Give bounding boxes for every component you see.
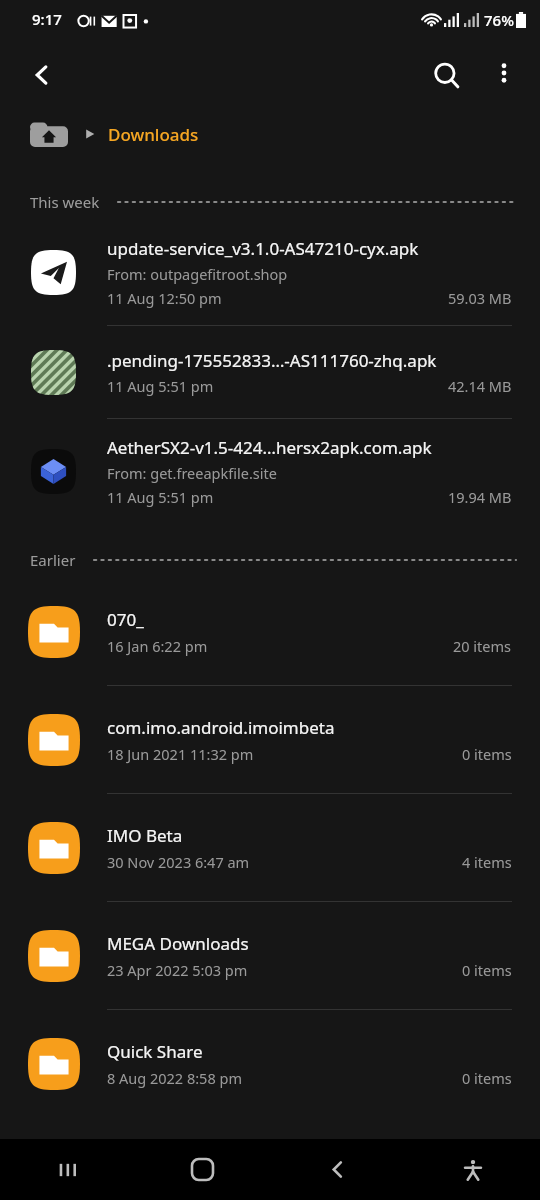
staticText: 0 items <box>462 744 512 764</box>
button[interactable]: MEGA Downloads <box>0 902 540 1009</box>
staticText: 19.94 MB <box>448 487 512 507</box>
staticText: 11 Aug 5:51 pm <box>107 487 214 507</box>
staticText: 0 items <box>462 1068 512 1088</box>
button[interactable]: AetherSX2-v1.5-424…hersx2apk.com.apk <box>0 419 540 524</box>
button[interactable]: Downloads <box>108 123 199 146</box>
staticText: com.imo.android.imoimbeta <box>107 716 335 739</box>
staticText: Downloads <box>108 123 199 146</box>
staticText: IMO Beta <box>107 824 183 847</box>
button[interactable]: Home <box>135 1139 270 1200</box>
staticText: 18 Jun 2021 11:32 pm <box>107 744 254 764</box>
button[interactable]: 070_ <box>0 578 540 685</box>
button[interactable]: Home folder <box>30 119 68 149</box>
staticText: 23 Apr 2022 5:03 pm <box>107 960 248 980</box>
button[interactable]: Quick Share <box>0 1010 540 1117</box>
staticText: MEGA Downloads <box>107 932 249 955</box>
staticText: .pending-175552833…-AS111760-zhq.apk <box>107 349 437 372</box>
staticText: From: outpagefitroot.shop <box>107 264 288 284</box>
staticText: 070_ <box>107 608 144 631</box>
staticText: 11 Aug 5:51 pm <box>107 376 214 396</box>
button[interactable]: Back <box>12 45 72 105</box>
staticText: 30 Nov 2023 6:47 am <box>107 852 250 872</box>
staticText: This week <box>30 192 100 212</box>
staticText: 11 Aug 12:50 pm <box>107 288 222 308</box>
staticText: 76% <box>484 10 514 30</box>
staticText: 8 Aug 2022 8:58 pm <box>107 1068 242 1088</box>
button[interactable]: More options <box>476 45 532 101</box>
staticText: 42.14 MB <box>448 376 512 396</box>
staticText: 9:17 <box>32 9 62 29</box>
button[interactable]: Accessibility <box>405 1139 540 1200</box>
staticText: AetherSX2-v1.5-424…hersx2apk.com.apk <box>107 436 432 459</box>
button[interactable]: com.imo.android.imoimbeta <box>0 686 540 793</box>
staticText: 4 items <box>462 852 512 872</box>
staticText: Earlier <box>30 550 76 570</box>
button[interactable]: .pending-175552833…-AS111760-zhq.apk <box>0 326 540 418</box>
button[interactable]: IMO Beta <box>0 794 540 901</box>
staticText: 16 Jan 6:22 pm <box>107 636 208 656</box>
button[interactable]: update-service_v3.1.0-AS47210-cyx.apk <box>0 220 540 325</box>
staticText: Quick Share <box>107 1040 203 1063</box>
staticText: 59.03 MB <box>448 288 512 308</box>
staticText: 0 items <box>462 960 512 980</box>
button[interactable]: Back <box>270 1139 405 1200</box>
staticText: update-service_v3.1.0-AS47210-cyx.apk <box>107 237 419 260</box>
button[interactable]: Recents <box>0 1139 135 1200</box>
staticText: 20 items <box>453 636 512 656</box>
button[interactable]: Search <box>416 45 476 105</box>
staticText: From: get.freeapkfile.site <box>107 463 277 483</box>
